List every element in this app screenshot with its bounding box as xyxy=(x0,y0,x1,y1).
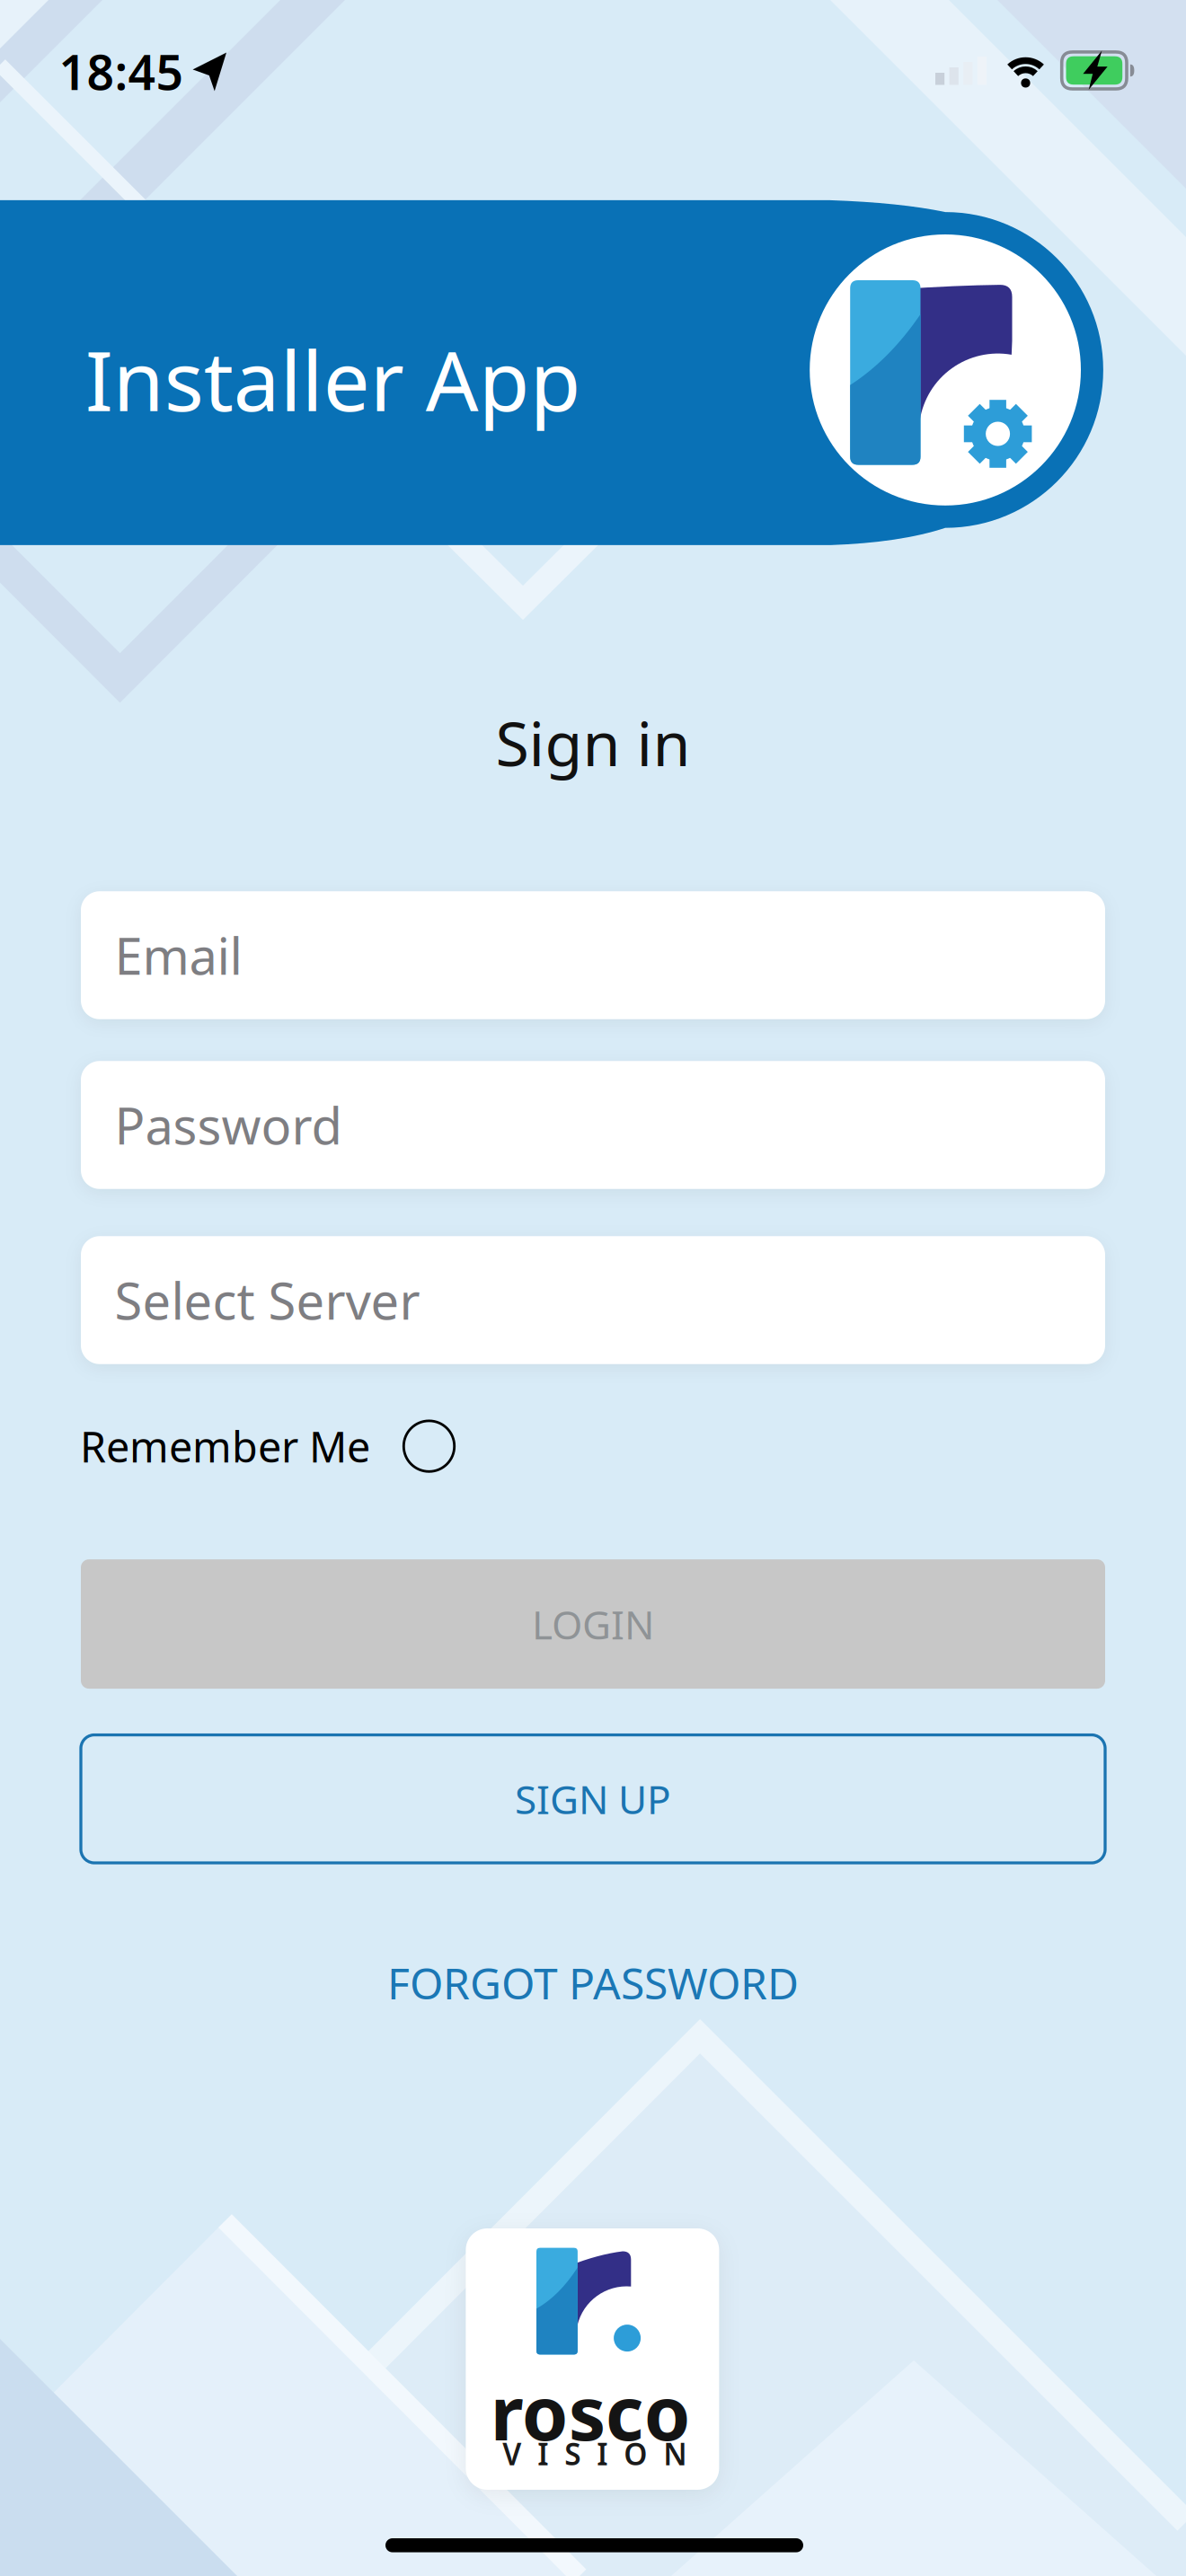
button[interactable]: Select Server xyxy=(81,1236,1105,1364)
staticText: LOGIN xyxy=(532,1598,654,1650)
staticText: 18:45 xyxy=(59,40,184,103)
staticText: Remember Me xyxy=(80,1418,370,1474)
staticText: SIGN UP xyxy=(515,1773,671,1825)
staticText: VISION xyxy=(503,2434,687,2474)
staticText: rosco xyxy=(490,2362,691,2461)
staticText: Email xyxy=(115,922,242,989)
button[interactable]: LOGIN xyxy=(81,1559,1105,1689)
staticText: Select Server xyxy=(115,1267,420,1334)
staticText: FORGOT PASSWORD xyxy=(387,1954,799,2011)
staticText: Installer App xyxy=(85,324,581,434)
button[interactable]: Remember Me xyxy=(80,1418,455,1474)
button[interactable]: SIGN UP xyxy=(81,1735,1105,1863)
staticText: Password xyxy=(115,1092,342,1158)
button[interactable]: Password xyxy=(81,1061,1105,1189)
staticText: Sign in xyxy=(496,702,690,783)
button[interactable]: Email xyxy=(81,891,1105,1019)
button[interactable]: FORGOT PASSWORD xyxy=(387,1954,799,2011)
